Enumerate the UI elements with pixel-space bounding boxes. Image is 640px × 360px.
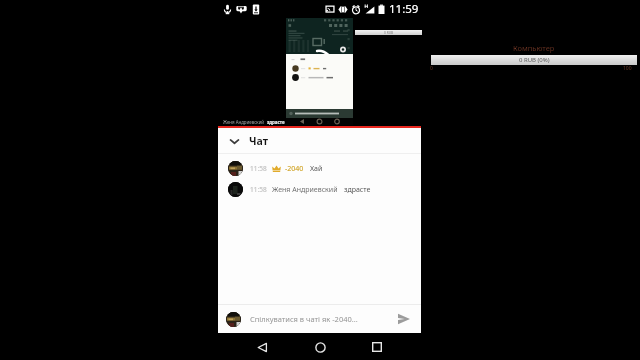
button[interactable]: Send message (394, 309, 414, 329)
button[interactable]: Back (249, 334, 275, 360)
staticText: Женя Андриевский (272, 185, 338, 195)
button[interactable]: 11:58 (218, 179, 421, 200)
staticText: 11:58 (250, 164, 267, 173)
staticText: 11:58 (250, 185, 267, 194)
staticText: 0 RUB (0%) (519, 56, 550, 64)
staticText: -2040 (285, 164, 304, 174)
staticText: здрасте (344, 185, 371, 195)
staticText: Чат (249, 134, 269, 148)
staticText: 11:59 (389, 1, 419, 17)
button[interactable]: Home (307, 334, 333, 360)
staticText: 0 RUB (384, 31, 394, 35)
button[interactable]: Спілкуватися в чаті як -2040... (218, 305, 421, 333)
button[interactable]: 11:58 (218, 158, 421, 179)
staticText: Компьютер (513, 43, 555, 53)
button[interactable]: Collapse chat (227, 134, 241, 148)
staticText: 0 (430, 65, 433, 72)
button[interactable]: Collapse chat (218, 128, 421, 153)
staticText: здрасте (267, 119, 285, 125)
staticText: Женя Андриевский (223, 119, 265, 125)
button[interactable]: Recent apps (364, 334, 390, 360)
staticText: Спілкуватися в чаті як -2040... (250, 314, 358, 324)
staticText: 100 (623, 65, 632, 72)
staticText: Хай (310, 164, 323, 174)
